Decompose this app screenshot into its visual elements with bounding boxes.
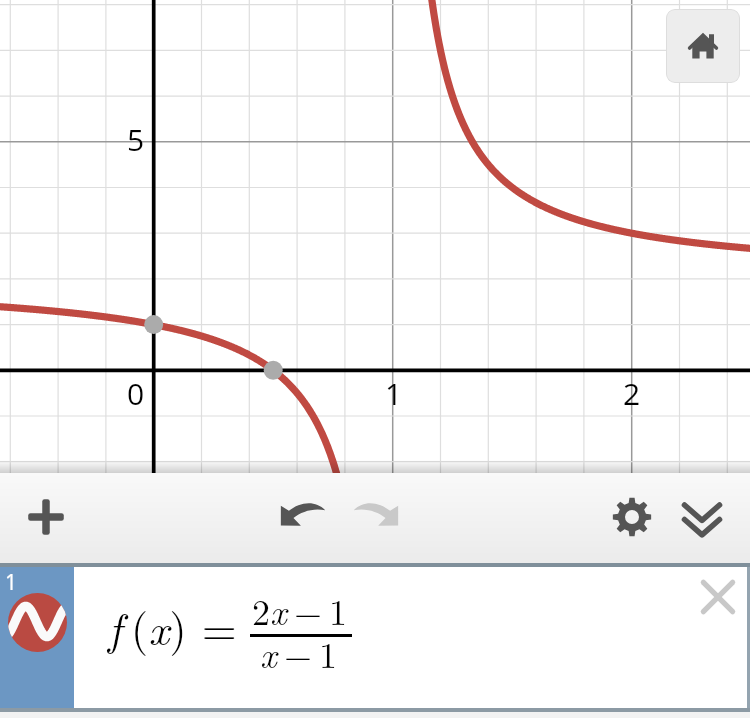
button[interactable]: Redo bbox=[348, 484, 404, 540]
staticText: 2 bbox=[623, 373, 641, 414]
button[interactable]: Undo bbox=[275, 484, 331, 540]
button[interactable]: Collapse bbox=[674, 492, 730, 548]
button[interactable]: Add expression bbox=[18, 489, 74, 545]
button[interactable]: Toggle graph bbox=[8, 593, 67, 652]
staticText: 1 bbox=[5, 568, 18, 597]
staticText: 0 bbox=[127, 373, 145, 414]
button[interactable]: Delete expression bbox=[692, 571, 744, 623]
staticText: 1 bbox=[385, 373, 403, 414]
button[interactable]: Settings bbox=[604, 489, 660, 545]
staticText: f (x) = bbox=[108, 594, 237, 658]
button[interactable]: Home bbox=[666, 9, 740, 83]
staticText: x − 1 bbox=[260, 627, 338, 678]
staticText: 2x − 1 bbox=[252, 584, 348, 635]
staticText: 5 bbox=[127, 119, 145, 160]
